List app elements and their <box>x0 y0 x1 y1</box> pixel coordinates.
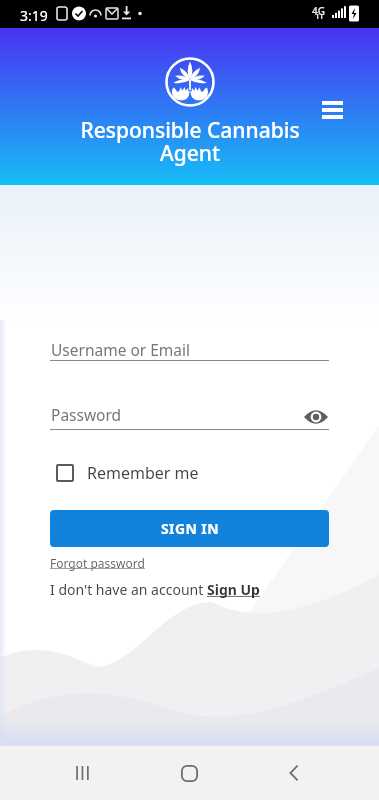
staticText: SIGN IN <box>161 519 219 538</box>
button[interactable]: Password <box>50 399 329 430</box>
button[interactable]: Forgot password <box>50 555 145 571</box>
button[interactable] <box>53 758 113 788</box>
staticText: 4G <box>312 4 325 18</box>
button[interactable] <box>322 101 356 127</box>
button[interactable]: Sign Up <box>207 580 260 599</box>
staticText: Password <box>51 404 122 425</box>
staticText: Sign Up <box>207 580 260 599</box>
button[interactable] <box>159 758 219 788</box>
button[interactable]: Username or Email <box>50 330 329 361</box>
staticText: Responsible Cannabis Agent <box>80 116 300 167</box>
staticText: I don't have an account <box>50 580 207 599</box>
staticText: 3:19 <box>20 6 48 25</box>
button[interactable]: Remember me <box>56 462 199 484</box>
staticText: Remember me <box>87 462 199 484</box>
button[interactable] <box>264 758 324 788</box>
button[interactable] <box>303 406 329 428</box>
staticText: Username or Email <box>51 339 191 360</box>
button[interactable]: SIGN IN <box>50 510 329 547</box>
staticText: Forgot password <box>50 555 145 571</box>
